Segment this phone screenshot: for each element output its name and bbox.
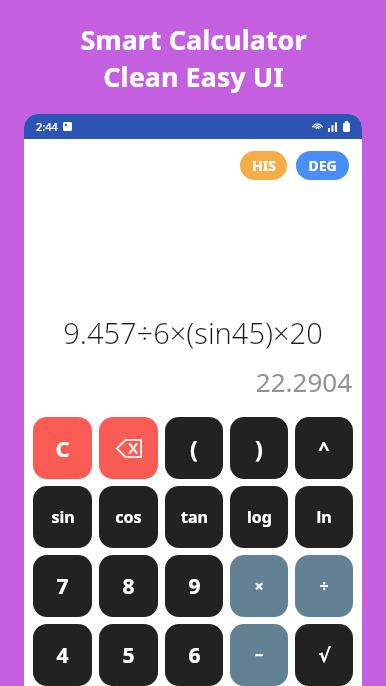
button[interactable]: Backspace [99,417,158,479]
staticText: ^ [318,435,330,462]
staticText: 22.2904 [24,364,352,399]
staticText: sin [51,506,75,528]
staticText: ÷ [319,575,329,597]
button[interactable]: − [230,624,288,686]
staticText: 7 [56,572,69,601]
button[interactable]: ) [230,417,288,479]
button[interactable]: sin [33,486,92,548]
button[interactable]: 4 [33,624,92,686]
button[interactable]: C [33,417,92,479]
staticText: ) [255,433,263,464]
button[interactable]: ÷ [295,555,353,617]
staticText: 9.457÷6×(sin45)×20 [24,313,362,352]
staticText: 6 [188,641,201,670]
staticText: × [254,575,264,597]
staticText: 8 [122,572,135,601]
button[interactable]: 5 [99,624,158,686]
button[interactable]: × [230,555,288,617]
staticText: ln [316,506,332,528]
button[interactable]: 9 [165,555,223,617]
staticText: 5 [122,641,135,670]
staticText: 2:44 [36,119,58,134]
button[interactable]: tan [165,486,223,548]
button[interactable]: 6 [165,624,223,686]
button[interactable]: ^ [295,417,353,479]
button[interactable]: cos [99,486,158,548]
staticText: 4 [56,641,69,670]
button[interactable]: 7 [33,555,92,617]
button[interactable]: DEG [296,151,349,180]
button[interactable]: 8 [99,555,158,617]
staticText: Smart Calculator Clean Easy UI [80,21,307,95]
button[interactable]: HIS [240,151,287,180]
button[interactable]: ( [165,417,223,479]
staticText: √ [318,644,331,666]
staticText: ( [190,433,198,464]
staticText: DEG [308,156,337,175]
staticText: cos [115,506,142,528]
staticText: − [254,644,264,666]
staticText: tan [181,506,208,528]
staticText: log [247,506,272,528]
button[interactable]: √ [295,624,353,686]
button[interactable]: ln [295,486,353,548]
staticText: HIS [252,156,276,175]
staticText: 9 [188,572,201,601]
button[interactable]: log [230,486,288,548]
staticText: C [55,433,70,463]
